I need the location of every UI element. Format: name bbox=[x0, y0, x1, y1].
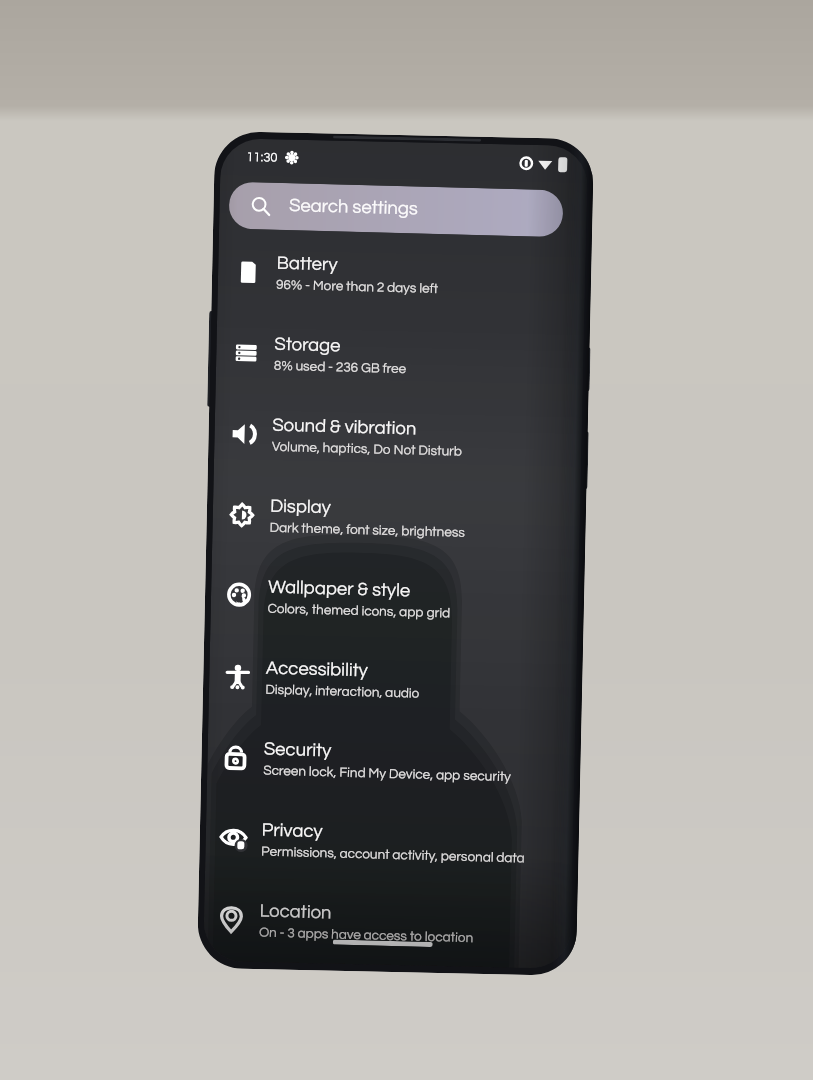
other: Search bbox=[251, 196, 271, 217]
staticText: Accessibility bbox=[266, 659, 368, 680]
staticText: Wallpaper & style bbox=[268, 578, 411, 600]
button[interactable]: Search bbox=[228, 181, 564, 237]
staticText: Display, interaction, audio bbox=[265, 683, 419, 701]
staticText: Screen lock, Find My Device, app securit… bbox=[263, 764, 511, 784]
staticText: On - 3 apps have access to location bbox=[259, 926, 474, 945]
button[interactable]: Location bbox=[203, 878, 570, 969]
button[interactable]: Wallpaper & style bbox=[210, 554, 579, 645]
staticText: Security bbox=[264, 740, 332, 760]
staticText: 8% used - 236 GB free bbox=[274, 359, 407, 376]
staticText: Privacy bbox=[261, 821, 323, 841]
staticText: Permissions, account activity, personal … bbox=[261, 845, 525, 865]
staticText: Location bbox=[259, 902, 332, 922]
staticText: 11:30 bbox=[246, 150, 278, 164]
button[interactable]: Display bbox=[212, 473, 581, 564]
button[interactable]: Sound & vibration bbox=[214, 392, 582, 483]
staticText: Search settings bbox=[289, 196, 418, 218]
staticText: Display bbox=[270, 497, 331, 517]
staticText: Dark theme, font size, brightness bbox=[269, 521, 466, 540]
staticText: Storage bbox=[274, 335, 342, 356]
staticText: Volume, haptics, Do Not Disturb bbox=[272, 440, 463, 459]
button[interactable]: Storage bbox=[216, 311, 584, 402]
staticText: Colors, themed icons, app grid bbox=[267, 602, 451, 620]
staticText: Battery bbox=[276, 254, 339, 274]
button[interactable]: Privacy bbox=[205, 797, 572, 888]
button[interactable]: Battery bbox=[218, 230, 586, 321]
staticText: 96% - More than 2 days left bbox=[276, 278, 439, 296]
button[interactable]: Accessibility bbox=[208, 635, 577, 726]
staticText: Sound & vibration bbox=[272, 416, 418, 438]
button[interactable]: Security bbox=[207, 716, 575, 807]
